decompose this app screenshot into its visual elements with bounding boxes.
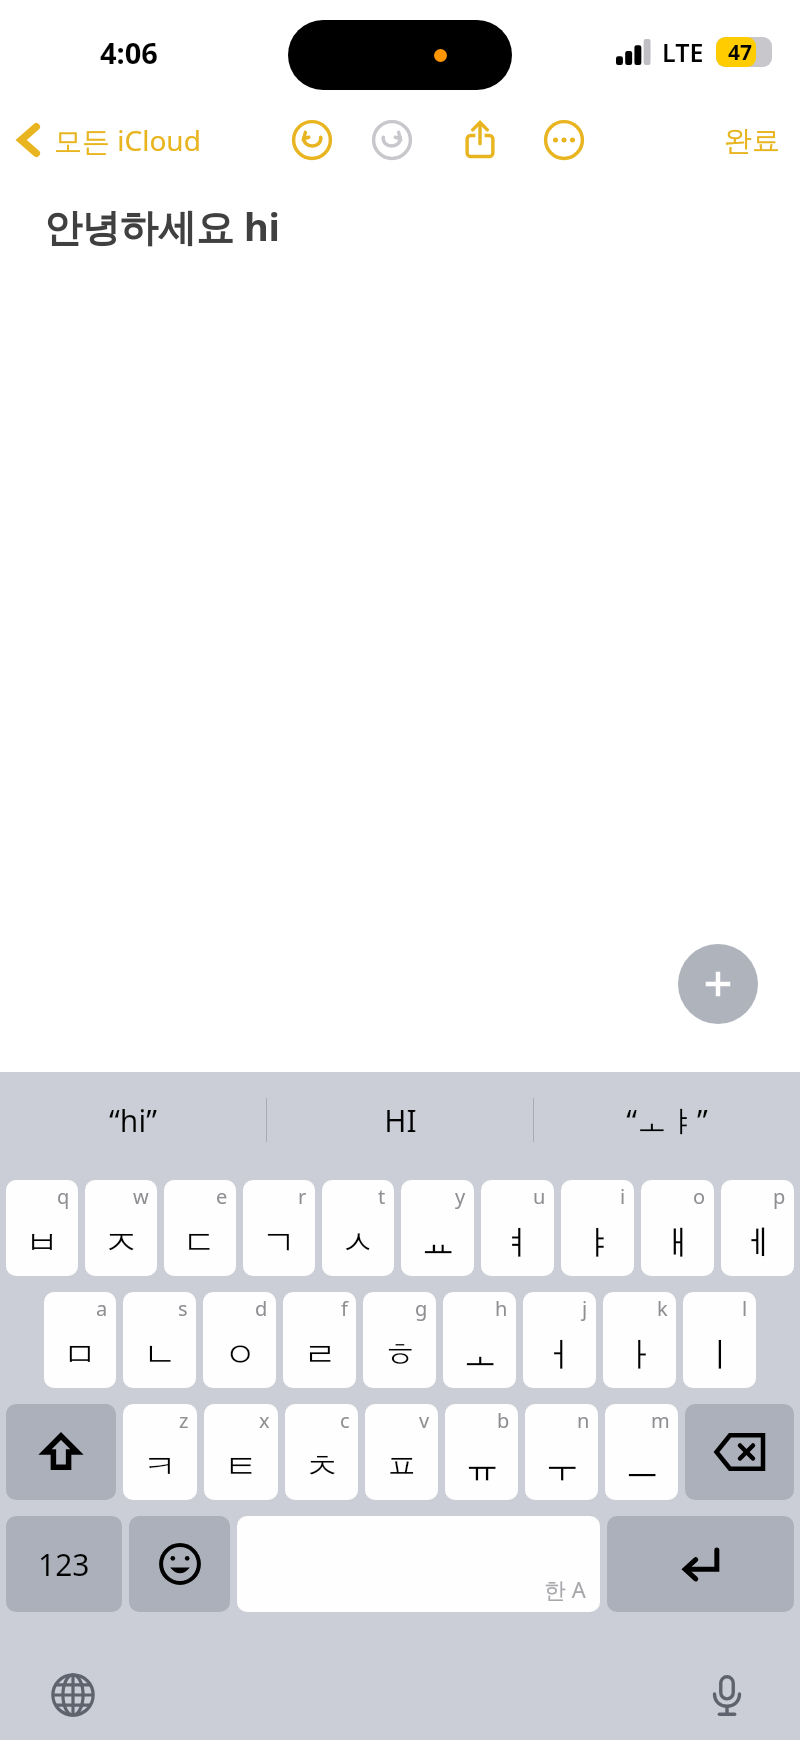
staticText: c [340,1407,350,1434]
staticText: ㅅ [341,1221,375,1264]
staticText: 123 [38,1544,90,1585]
staticText: d [255,1295,268,1322]
staticText: ㅑ [581,1221,615,1264]
staticText: ㅗ [463,1333,497,1376]
button[interactable]: j [523,1292,596,1388]
staticText: ㅓ [543,1333,577,1376]
button[interactable]: m [605,1404,678,1500]
button[interactable]: “ㅗㅑ” [534,1072,800,1168]
button[interactable]: “hi” [0,1072,266,1168]
staticText: u [533,1183,546,1210]
staticText: ㅕ [501,1221,535,1264]
button[interactable]: Space [237,1516,600,1612]
staticText: ㄹ [303,1333,337,1376]
staticText: ㄷ [183,1221,217,1264]
staticText: ㅔ [741,1221,775,1264]
button[interactable]: y [401,1180,474,1276]
staticText: g [415,1295,428,1322]
button[interactable]: p [721,1180,794,1276]
staticText: b [497,1407,510,1434]
button[interactable]: i [561,1180,634,1276]
staticText: ㄴ [143,1333,177,1376]
button[interactable]: 123 [6,1516,122,1612]
button[interactable]: o [641,1180,714,1276]
staticText: p [773,1183,786,1210]
button[interactable]: 모든 iCloud [0,114,211,166]
staticText: 4:06 [100,33,158,72]
button[interactable]: h [443,1292,516,1388]
button[interactable]: t [322,1180,394,1276]
button[interactable]: More [537,113,591,167]
button[interactable]: 완료 [704,115,800,166]
staticText: LTE [662,35,704,69]
button[interactable]: v [365,1404,438,1500]
staticText: l [742,1295,748,1322]
staticText: 안녕하세요 hi [44,200,280,252]
staticText: 한 A [544,1574,586,1604]
staticText: ㅡ [625,1445,659,1488]
button[interactable]: w [85,1180,157,1276]
button[interactable]: q [6,1180,78,1276]
staticText: n [577,1407,590,1434]
staticText: ㅊ [305,1445,339,1488]
staticText: o [693,1183,706,1210]
staticText: ㅈ [104,1221,138,1264]
button[interactable]: k [603,1292,676,1388]
staticText: 47 [728,38,753,67]
button[interactable]: a [44,1292,116,1388]
staticText: v [419,1407,430,1434]
staticText: ㅋ [143,1445,177,1488]
button[interactable]: Dictation [692,1660,762,1730]
staticText: ㅠ [465,1445,499,1488]
staticText: ㅁ [63,1333,97,1376]
staticText: ㅌ [224,1445,258,1488]
staticText: i [620,1183,626,1210]
staticText: “ㅗㅑ” [626,1100,708,1141]
staticText: m [651,1407,670,1434]
staticText: x [259,1407,270,1434]
button[interactable]: f [283,1292,356,1388]
button[interactable]: g [363,1292,436,1388]
button[interactable]: Emoji [129,1516,230,1612]
staticText: ㅛ [421,1221,455,1264]
button[interactable]: z [123,1404,197,1500]
staticText: a [96,1295,108,1322]
staticText: k [657,1295,668,1322]
button[interactable]: Undo [285,113,339,167]
button[interactable]: u [481,1180,554,1276]
button[interactable]: d [203,1292,276,1388]
button[interactable]: s [123,1292,196,1388]
staticText: ㅂ [25,1221,59,1264]
staticText: q [57,1183,70,1210]
button[interactable]: x [204,1404,278,1500]
staticText: r [298,1183,307,1210]
staticText: ㅐ [661,1221,695,1264]
staticText: ㅎ [383,1333,417,1376]
button[interactable]: r [243,1180,315,1276]
staticText: s [178,1295,188,1322]
staticText: ㅇ [223,1333,257,1376]
button[interactable]: Add attachment [678,944,758,1024]
staticText: ㅏ [623,1333,657,1376]
button[interactable]: HI [267,1072,533,1168]
button[interactable]: e [164,1180,236,1276]
button[interactable]: Share [453,113,507,167]
button[interactable]: Change keyboard [38,1660,108,1730]
button[interactable]: Shift [6,1404,116,1500]
staticText: HI [384,1100,417,1141]
button[interactable]: Backspace [685,1404,794,1500]
staticText: h [495,1295,508,1322]
button[interactable]: Return [607,1516,794,1612]
staticText: ㅣ [703,1333,737,1376]
staticText: y [455,1183,466,1210]
staticText: e [216,1183,228,1210]
staticText: z [179,1407,189,1434]
staticText: w [133,1183,149,1210]
button[interactable]: l [683,1292,756,1388]
staticText: f [341,1295,348,1322]
staticText: ㅍ [385,1445,419,1488]
button[interactable]: b [445,1404,518,1500]
button[interactable]: c [285,1404,358,1500]
button[interactable]: n [525,1404,598,1500]
button[interactable]: Redo [365,113,419,167]
